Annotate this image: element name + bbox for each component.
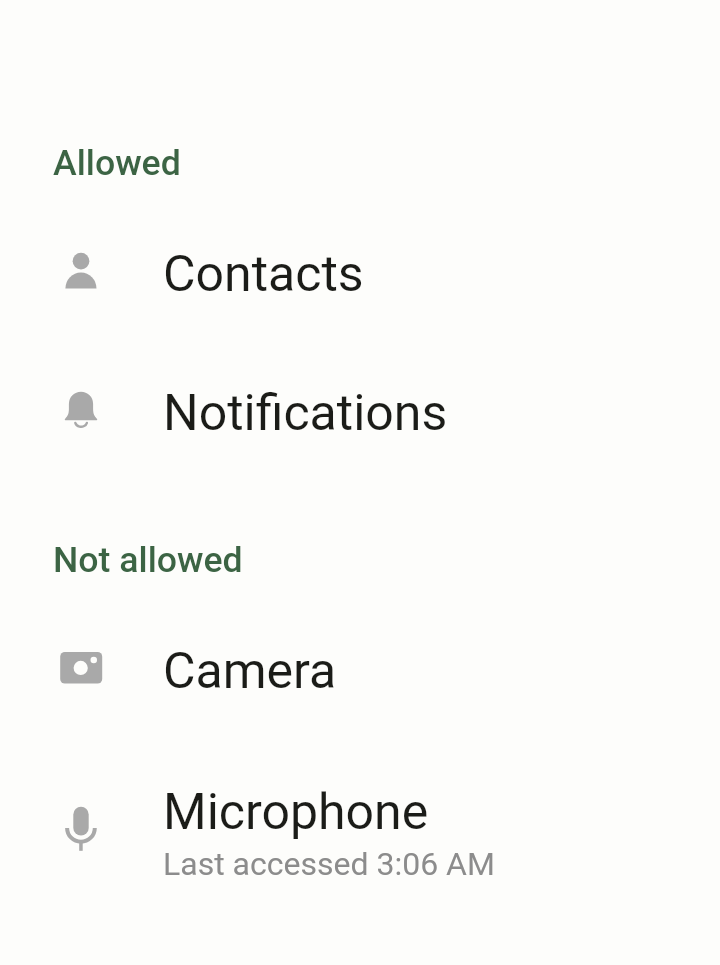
staticText: Allowed xyxy=(53,142,181,184)
staticText: Notifications xyxy=(163,384,448,443)
button[interactable]: Contacts permission xyxy=(0,220,720,359)
staticText: Camera xyxy=(163,642,337,701)
other: Contacts permission xyxy=(51,240,111,300)
staticText: Last accessed 3:06 AM xyxy=(163,845,495,883)
other: Microphone permission xyxy=(51,798,111,858)
other: Notifications permission xyxy=(51,379,111,439)
staticText: Microphone xyxy=(163,783,429,842)
button[interactable]: Microphone permission xyxy=(0,757,720,896)
staticText: Not allowed xyxy=(53,539,243,581)
other: Camera permission xyxy=(51,637,111,697)
staticText: Contacts xyxy=(163,245,364,304)
button[interactable]: Notifications permission xyxy=(0,359,720,498)
button[interactable]: Camera permission xyxy=(0,617,720,756)
